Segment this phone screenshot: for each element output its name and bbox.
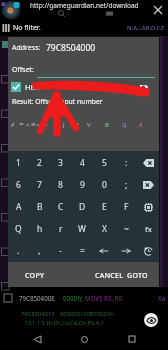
- button[interactable]: h: [29, 218, 50, 240]
- staticText: E: [102, 201, 107, 213]
- button[interactable]: 79C8504010: [0, 306, 168, 328]
- staticText: 7: [37, 179, 42, 191]
- button[interactable]: =: [71, 240, 93, 262]
- button[interactable]: Key action: [137, 218, 159, 240]
- button[interactable]: 4: [71, 151, 93, 174]
- staticText: V: [87, 121, 91, 129]
- button[interactable]: 6: [8, 174, 29, 196]
- staticText: X: [139, 121, 143, 129]
- button[interactable]: HEX: [11, 81, 40, 93]
- staticText: 1: [16, 157, 21, 169]
- button[interactable]: 3: [50, 151, 71, 174]
- button[interactable]: 9: [71, 174, 93, 196]
- button[interactable]: Key action: [137, 196, 159, 218]
- staticText: B: [37, 201, 43, 213]
- button[interactable]: X: [93, 218, 115, 240]
- button[interactable]: ,: [29, 240, 50, 262]
- staticText: 0: [102, 179, 107, 191]
- staticText: ;: [125, 179, 128, 191]
- staticText: C: [58, 201, 64, 213]
- button[interactable]: Search: [56, 8, 66, 18]
- button[interactable]: 8: [50, 174, 71, 196]
- staticText: r: [59, 223, 63, 235]
- button[interactable]: Recents: [121, 328, 143, 350]
- button[interactable]: ;: [115, 174, 137, 196]
- staticText: 79C850400E: [19, 294, 55, 302]
- staticText: fx: [145, 224, 152, 234]
- button[interactable]: Toggle overlay: [144, 313, 158, 327]
- staticText: ~: [124, 223, 129, 235]
- button[interactable]: Q: [8, 218, 29, 240]
- staticText: 8: [58, 179, 63, 191]
- staticText: 2: [37, 157, 42, 169]
- button[interactable]: E: [93, 196, 115, 218]
- staticText: 79C8504010: [21, 310, 55, 318]
- button[interactable]: -: [50, 240, 71, 262]
- staticText: ≈: [19, 121, 24, 128]
- button[interactable]: 5: [93, 151, 115, 174]
- button[interactable]: Key action: [137, 174, 159, 196]
- staticText: 9: [80, 179, 85, 191]
- staticText: Address:: [12, 43, 41, 53]
- button[interactable]: [37, 62, 155, 78]
- button[interactable]: C: [50, 196, 71, 218]
- staticText: ≠: [11, 121, 15, 129]
- staticText: 6: [16, 179, 21, 191]
- staticText: W: [78, 223, 86, 235]
- staticText: >: [36, 121, 40, 129]
- button[interactable]: F: [115, 196, 137, 218]
- staticText: E: [76, 121, 80, 129]
- button[interactable]: .: [8, 240, 29, 262]
- button[interactable]: W: [71, 218, 93, 240]
- staticText: Q: [122, 121, 127, 129]
- staticText: .: [17, 245, 20, 257]
- button[interactable]: 79C850400E: [0, 289, 168, 306]
- staticText: J: [63, 121, 65, 129]
- staticText: 3: [58, 157, 63, 169]
- staticText: Xa: [158, 294, 166, 302]
- staticText: HEX: [25, 82, 40, 92]
- button[interactable]: CANCEL: [91, 268, 128, 284]
- button[interactable]: Move right: [115, 240, 137, 262]
- staticText: GOTO: [127, 271, 148, 281]
- button[interactable]: Screenshot: [104, 8, 114, 18]
- staticText: <: [26, 121, 30, 129]
- staticText: F: [124, 201, 129, 213]
- button[interactable]: :: [115, 151, 137, 174]
- button[interactable]: Save: [136, 81, 151, 96]
- button[interactable]: Key action: [137, 151, 159, 174]
- staticText: COPY: [25, 271, 45, 281]
- button[interactable]: COPY: [21, 268, 49, 284]
- staticText: ≤: [31, 121, 36, 128]
- staticText: D: [79, 201, 86, 213]
- button[interactable]: A: [8, 196, 29, 218]
- staticText: Result: Offset: input number: [12, 97, 103, 106]
- button[interactable]: D: [71, 196, 93, 218]
- button[interactable]: 7: [29, 174, 50, 196]
- button[interactable]: 1: [8, 151, 29, 174]
- staticText: ≥: [43, 121, 48, 128]
- button[interactable]: GOTO: [123, 268, 152, 284]
- staticText: :: [125, 157, 128, 169]
- staticText: No filter.: [13, 23, 41, 33]
- staticText: Offset:: [12, 65, 34, 75]
- staticText: A: [16, 201, 22, 213]
- staticText: 5: [102, 157, 107, 169]
- staticText: 000000100B70003h: [60, 310, 114, 318]
- button[interactable]: 0: [93, 174, 115, 196]
- button[interactable]: Close: [151, 3, 165, 17]
- button[interactable]: Home: [73, 328, 95, 350]
- button[interactable]: History: [137, 240, 159, 262]
- button[interactable]: 2: [29, 151, 50, 174]
- button[interactable]: Back: [26, 328, 48, 350]
- button[interactable]: ~: [115, 218, 137, 240]
- button[interactable]: B: [29, 196, 50, 218]
- staticText: =: [80, 245, 85, 257]
- staticText: Jh,Ch,Ca,Cd,Cb,PS,A.1: [47, 319, 105, 327]
- button[interactable]: Move left: [93, 240, 115, 262]
- staticText: CANCEL: [95, 271, 124, 281]
- staticText: X: [102, 223, 107, 235]
- button[interactable]: r: [50, 218, 71, 240]
- staticText: 101.1 S: [25, 319, 45, 327]
